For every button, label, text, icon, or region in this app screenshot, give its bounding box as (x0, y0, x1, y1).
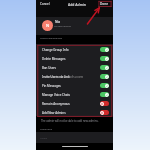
button[interactable]: Delete Messages (36, 54, 113, 63)
button[interactable]: N (36, 17, 113, 35)
button[interactable]: Remain Anonymous (36, 99, 113, 108)
staticText: The admin will not be able to add new ad… (41, 119, 99, 123)
staticText: Admin (40, 136, 48, 139)
button[interactable]: Change Group Info (36, 45, 113, 54)
staticText: www.techwatch.com (46, 74, 84, 80)
staticText: Add New Admins (42, 111, 66, 115)
staticText: Nia (55, 20, 61, 24)
button[interactable]: Cancel (37, 0, 53, 8)
staticText: last seen recently (54, 25, 72, 28)
button[interactable]: Invite Users via Link (36, 72, 113, 81)
button[interactable]: Pin Messages (36, 81, 113, 90)
button[interactable]: Done (98, 0, 111, 8)
staticText: Pin Messages (42, 84, 61, 88)
button[interactable]: Ban Users (36, 63, 113, 72)
staticText: Ban Users (42, 66, 56, 70)
staticText: Remain Anonymous (42, 102, 70, 106)
staticText: Cancel (40, 2, 50, 6)
staticText: Change Group Info (42, 48, 69, 52)
staticText: Done (100, 2, 109, 6)
button[interactable]: Manage Voice Chats (36, 90, 113, 99)
other: Enabled (100, 92, 109, 97)
staticText: Add Admin (68, 2, 86, 7)
other: Enabled (100, 83, 109, 88)
staticText: Delete Messages (42, 57, 66, 61)
other: Disabled (100, 110, 109, 115)
staticText: Invite Users via Link (42, 75, 70, 79)
staticText: N (46, 23, 50, 28)
staticText: Manage Voice Chats (42, 93, 70, 97)
other: Enabled (100, 74, 109, 79)
other: Enabled (100, 56, 109, 61)
staticText: WHAT CAN THIS ADMIN DO? (40, 37, 62, 40)
other: Enabled (100, 47, 109, 52)
other: Disabled (100, 101, 109, 106)
staticText: CUSTOM TITLE (40, 128, 52, 131)
other: Enabled (100, 65, 109, 70)
button[interactable]: Add New Admins (36, 108, 113, 117)
